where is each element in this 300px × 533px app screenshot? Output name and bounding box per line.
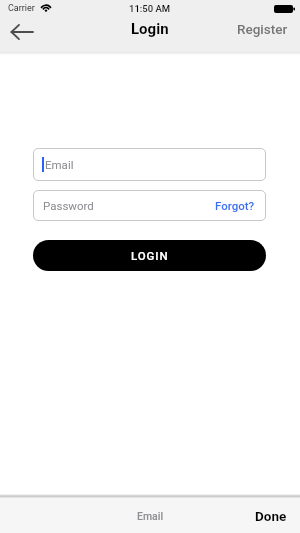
- staticText: Done: [255, 508, 287, 524]
- staticText: Register: [237, 21, 288, 37]
- button[interactable]: [4, 18, 40, 46]
- button[interactable]: Done: [255, 508, 300, 524]
- button[interactable]: Email: [137, 510, 164, 522]
- staticText: Email: [137, 510, 164, 522]
- staticText: Password: [43, 199, 94, 212]
- staticText: 11:50 AM: [129, 3, 171, 14]
- staticText: Login: [131, 20, 169, 38]
- staticText: Carrier: [8, 3, 35, 14]
- button[interactable]: Password: [33, 190, 266, 221]
- button[interactable]: Register: [237, 19, 300, 39]
- button[interactable]: Forgot?: [215, 199, 255, 212]
- staticText: LOGIN: [131, 249, 169, 262]
- button[interactable]: LOGIN: [33, 240, 266, 271]
- staticText: Email: [45, 158, 74, 171]
- button[interactable]: Email: [33, 148, 266, 181]
- staticText: Forgot?: [215, 199, 255, 212]
